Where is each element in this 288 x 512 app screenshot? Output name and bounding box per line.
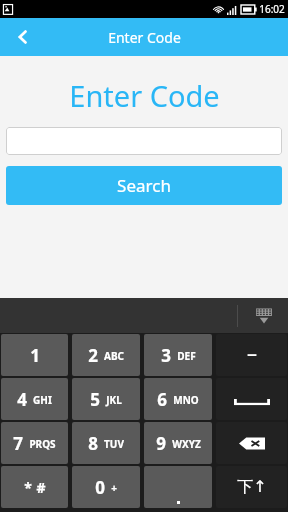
staticText: 3 bbox=[161, 344, 171, 367]
button[interactable]: 0 bbox=[72, 466, 140, 508]
staticText: * bbox=[24, 478, 32, 497]
button[interactable]: 1 bbox=[1, 334, 68, 376]
button[interactable]: 4 bbox=[1, 378, 68, 420]
staticText: # bbox=[36, 478, 46, 497]
staticText: 下↑ bbox=[237, 477, 267, 497]
staticText: Enter Code bbox=[108, 28, 181, 47]
staticText: 8 bbox=[88, 432, 98, 455]
staticText: Search bbox=[117, 174, 171, 197]
button[interactable] bbox=[6, 127, 282, 155]
button[interactable]: Next bbox=[216, 466, 287, 508]
button[interactable]: 2 bbox=[72, 334, 140, 376]
staticText: 0 bbox=[95, 476, 105, 499]
staticText: 16:02 bbox=[259, 2, 285, 16]
staticText: JKL bbox=[106, 393, 122, 407]
staticText: 4 bbox=[17, 388, 27, 411]
button[interactable]: Hide keyboard bbox=[240, 298, 288, 333]
button[interactable]: Backspace bbox=[216, 422, 287, 464]
button[interactable]: 8 bbox=[72, 422, 140, 464]
staticText: 2 bbox=[88, 344, 98, 367]
button[interactable]: 3 bbox=[144, 334, 212, 376]
staticText: 7 bbox=[13, 432, 23, 455]
button[interactable]: 6 bbox=[144, 378, 212, 420]
staticText: Enter Code bbox=[69, 76, 220, 115]
staticText: + bbox=[111, 481, 117, 495]
button[interactable]: * bbox=[1, 466, 68, 508]
staticText: PRQS bbox=[29, 437, 56, 451]
staticText: 6 bbox=[157, 388, 167, 411]
button[interactable]: 7 bbox=[1, 422, 68, 464]
staticText: ABC bbox=[104, 349, 124, 363]
staticText: 9 bbox=[156, 432, 166, 455]
staticText: 1 bbox=[30, 344, 40, 367]
staticText: WXYZ bbox=[172, 437, 201, 451]
staticText: MNO bbox=[173, 393, 199, 407]
staticText: TUV bbox=[104, 437, 124, 451]
button[interactable]: Dash bbox=[216, 334, 287, 376]
button[interactable]: Space bbox=[216, 378, 287, 420]
button[interactable]: 5 bbox=[72, 378, 140, 420]
button[interactable]: Search bbox=[6, 166, 282, 205]
staticText: DEF bbox=[177, 349, 196, 363]
button[interactable]: 9 bbox=[144, 422, 212, 464]
button[interactable]: Period bbox=[144, 466, 212, 508]
button[interactable]: Back bbox=[0, 18, 46, 56]
staticText: 5 bbox=[90, 388, 100, 411]
staticText: GHI bbox=[33, 393, 52, 407]
